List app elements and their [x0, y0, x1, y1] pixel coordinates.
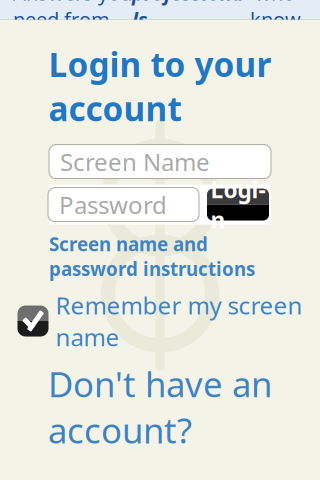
staticText: Login to your account: [48, 42, 271, 130]
button[interactable]: Login: [207, 189, 269, 221]
staticText: Don't have an account?: [48, 361, 272, 453]
button[interactable]: Password: [48, 188, 199, 222]
staticText: eDocAmerica: [13, 0, 257, 23]
button[interactable]: Screen Name: [49, 145, 271, 179]
button[interactable]: Remember my screen name: [17, 289, 302, 353]
staticText: Password: [59, 189, 167, 220]
staticText: who know...: [250, 0, 315, 33]
staticText: Login: [210, 174, 265, 235]
staticText: Screen name and password instructions: [49, 232, 255, 281]
button[interactable]: Don't have an account?: [48, 361, 272, 453]
button[interactable]: Screen name and password instructions: [49, 232, 271, 281]
staticText: professionals: [132, 0, 250, 33]
staticText: Screen Name: [60, 146, 210, 177]
staticText: Answers you need from: [13, 0, 132, 33]
staticText: Remember my screen name: [55, 289, 302, 353]
